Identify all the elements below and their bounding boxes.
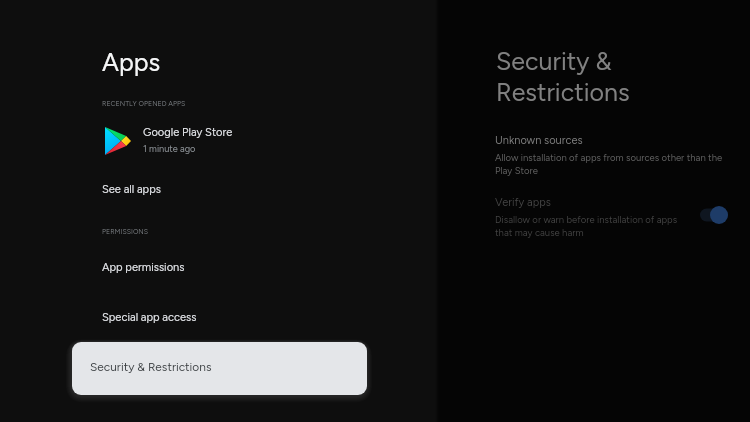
button[interactable]: Verify apps toggle, on [700, 206, 728, 224]
staticText: Google Play Store [143, 125, 233, 138]
staticText: Allow installation of apps from sources … [495, 152, 727, 176]
staticText: PERMISSIONS [102, 227, 149, 235]
button[interactable]: Verify apps [479, 190, 739, 246]
button[interactable]: Security & Restrictions [72, 342, 367, 395]
staticText: App permissions [102, 260, 185, 273]
other: Google Play Store icon [105, 127, 131, 155]
staticText: Apps [102, 47, 161, 77]
staticText: RECENTLY OPENED APPS [102, 99, 186, 107]
button[interactable]: Unknown sources [479, 128, 739, 184]
button[interactable]: App permissions [0, 251, 437, 281]
staticText: Security & Restrictions [496, 46, 630, 107]
button[interactable]: Google Play Store icon [0, 119, 437, 163]
staticText: Special app access [102, 310, 197, 323]
button[interactable]: Special app access [0, 301, 437, 331]
button[interactable]: See all apps [0, 173, 437, 203]
staticText: 1 minute ago [143, 143, 196, 154]
staticText: Security & Restrictions [90, 360, 212, 374]
staticText: Unknown sources [495, 134, 583, 147]
staticText: Verify apps [495, 196, 551, 209]
staticText: Disallow or warn before installation of … [495, 214, 687, 238]
staticText: See all apps [102, 182, 161, 195]
